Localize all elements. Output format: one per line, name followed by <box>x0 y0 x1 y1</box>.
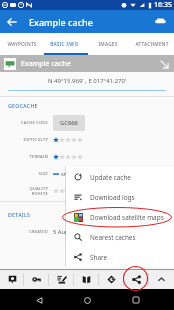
staticText: IMAGES <box>98 41 118 48</box>
staticText: 16:35 <box>154 0 172 10</box>
button[interactable]: TERRAIN <box>0 148 174 165</box>
staticText: DETAILS <box>8 211 31 218</box>
button[interactable]: GC666 <box>53 115 85 131</box>
staticText: TERRAIN <box>29 154 48 159</box>
staticText: Download logs <box>90 193 135 202</box>
staticText: Download satellite maps <box>90 213 164 222</box>
button[interactable]: Cache type <box>149 10 172 33</box>
button[interactable]: Back <box>29 290 49 310</box>
staticText: GC666 <box>60 119 78 127</box>
button[interactable]: CREATED <box>0 223 174 240</box>
staticText: GEOCACHE <box>8 102 38 109</box>
staticText: Example cache <box>29 16 93 28</box>
staticText: WAYPOINTS <box>7 41 37 48</box>
button[interactable]: Collapse <box>157 57 171 71</box>
button[interactable]: IMAGES <box>86 33 130 55</box>
button[interactable]: Share <box>66 247 174 267</box>
button[interactable]: More <box>149 270 174 289</box>
button[interactable]: Logged <box>0 270 24 289</box>
button[interactable]: Navigate up <box>0 10 23 33</box>
staticText: BASIC INFO <box>50 41 79 48</box>
button[interactable]: WAYPOINTS <box>0 33 43 55</box>
staticText: QUALITY ROVETE <box>29 186 48 196</box>
staticText: Share <box>90 253 108 262</box>
button[interactable]: Share <box>124 270 149 289</box>
staticText: DIFFICULTY <box>23 137 48 142</box>
staticText: Nearest caches <box>90 233 136 242</box>
staticText: small <box>61 170 76 178</box>
staticText: ATTACHMENT <box>135 41 169 48</box>
staticText: 5 August 2013 <box>53 228 92 236</box>
button[interactable]: Nearest caches <box>66 227 174 247</box>
button[interactable]: Update cache <box>66 167 174 187</box>
button[interactable]: CACHE CODE <box>0 114 174 131</box>
button[interactable]: DIFFICULTY <box>0 131 174 148</box>
button[interactable]: Download logs <box>66 187 174 207</box>
staticText: CREATED <box>29 229 48 234</box>
button[interactable]: BASIC INFO <box>43 33 86 55</box>
button[interactable]: Map <box>74 270 99 289</box>
button[interactable]: Log visit <box>49 270 74 289</box>
button[interactable]: ATTACHMENT <box>130 33 174 55</box>
staticText: N 49°15.969' , E 017°41.270' <box>48 77 127 85</box>
button[interactable]: Example cache <box>0 55 174 72</box>
button[interactable]: Compass <box>99 270 124 289</box>
button[interactable]: Home <box>77 290 97 310</box>
button[interactable]: Download satellite maps <box>66 207 174 227</box>
button[interactable]: QUALITY ROVETE <box>0 182 174 199</box>
staticText: CACHE CODE <box>20 120 48 125</box>
button[interactable]: Recent apps <box>126 290 146 310</box>
button[interactable]: SIZE <box>0 165 174 182</box>
staticText: Update cache <box>90 173 131 182</box>
staticText: Example cache <box>21 59 71 69</box>
button[interactable]: Key <box>24 270 49 289</box>
staticText: SIZE <box>38 171 48 176</box>
button[interactable]: N 49°15.969' , E 017°41.270' <box>0 72 174 90</box>
